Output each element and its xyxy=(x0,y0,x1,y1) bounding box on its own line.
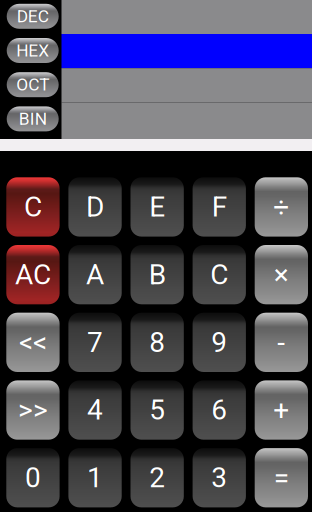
button[interactable]: × xyxy=(255,245,308,304)
staticText: 4 xyxy=(87,394,103,426)
staticText: D xyxy=(86,190,104,223)
button[interactable]: D xyxy=(68,177,122,237)
staticText: + xyxy=(273,394,289,426)
button[interactable]: 5 xyxy=(130,380,184,440)
staticText: HEX xyxy=(16,40,49,61)
button[interactable]: 7 xyxy=(68,313,122,372)
staticText: 5 xyxy=(149,394,165,426)
staticText: A xyxy=(86,258,104,291)
button[interactable]: E xyxy=(130,177,184,237)
button[interactable]: ÷ xyxy=(255,177,308,237)
button[interactable]: 2 xyxy=(130,448,184,507)
button[interactable]: DEC xyxy=(7,4,59,29)
button[interactable]: >> xyxy=(6,380,60,440)
staticText: = xyxy=(274,461,289,494)
staticText: - xyxy=(277,326,285,359)
staticText: << xyxy=(19,326,47,359)
button[interactable]: = xyxy=(255,448,308,507)
staticText: ÷ xyxy=(273,190,289,223)
button[interactable]: 0 xyxy=(6,448,60,507)
staticText: F xyxy=(212,190,227,223)
staticText: 8 xyxy=(149,326,165,359)
button[interactable]: << xyxy=(6,313,60,372)
button[interactable]: F xyxy=(193,177,246,237)
button[interactable]: AC xyxy=(6,245,60,304)
button[interactable]: C xyxy=(193,245,246,304)
staticText: 2 xyxy=(149,461,165,494)
staticText: 3 xyxy=(211,461,227,494)
staticText: E xyxy=(149,190,165,223)
staticText: 9 xyxy=(211,326,227,359)
button[interactable]: 6 xyxy=(193,380,246,440)
staticText: DEC xyxy=(17,6,49,26)
button[interactable]: B xyxy=(130,245,184,304)
button[interactable]: 9 xyxy=(193,313,246,372)
staticText: B xyxy=(149,258,166,291)
button[interactable]: - xyxy=(255,313,308,372)
button[interactable]: 4 xyxy=(68,380,122,440)
staticText: >> xyxy=(18,394,48,426)
staticText: OCT xyxy=(16,74,49,95)
staticText: AC xyxy=(15,258,51,291)
button[interactable]: A xyxy=(68,245,122,304)
button[interactable]: HEX xyxy=(7,38,59,63)
staticText: C xyxy=(210,258,228,291)
button[interactable]: + xyxy=(255,380,308,440)
button[interactable]: 8 xyxy=(130,313,184,372)
button[interactable]: 1 xyxy=(68,448,122,507)
staticText: BIN xyxy=(19,109,47,129)
button[interactable]: OCT xyxy=(7,72,59,97)
button[interactable]: 3 xyxy=(193,448,246,507)
staticText: 6 xyxy=(211,394,227,426)
staticText: 7 xyxy=(87,326,103,359)
staticText: C xyxy=(24,190,42,223)
staticText: × xyxy=(274,258,289,291)
staticText: 1 xyxy=(87,461,103,494)
button[interactable]: BIN xyxy=(7,106,59,131)
button[interactable]: C xyxy=(6,177,60,237)
staticText: 0 xyxy=(25,461,41,494)
